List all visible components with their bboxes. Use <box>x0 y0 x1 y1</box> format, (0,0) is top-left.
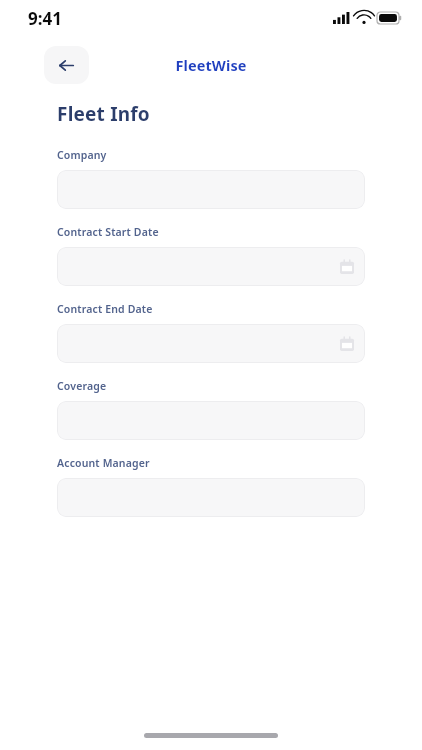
staticText: Company <box>57 148 107 162</box>
staticText: FleetWise <box>175 55 247 75</box>
staticText: Contract Start Date <box>57 225 159 239</box>
staticText: Account Manager <box>57 456 150 470</box>
staticText: Fleet Info <box>57 101 150 127</box>
button[interactable]: Back <box>44 46 89 84</box>
other: Pick date <box>340 337 354 351</box>
other: Pick date <box>340 260 354 274</box>
staticText: Contract End Date <box>57 302 153 316</box>
staticText: Coverage <box>57 379 107 393</box>
staticText: 9:41 <box>28 7 62 30</box>
